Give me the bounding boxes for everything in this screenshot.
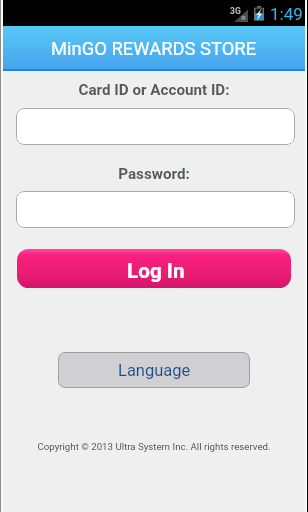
staticText: 3G bbox=[230, 6, 241, 16]
staticText: Password: bbox=[0, 165, 308, 183]
button[interactable] bbox=[16, 191, 295, 228]
button[interactable]: Language bbox=[58, 352, 250, 388]
staticText: MinGO REWARDS STORE bbox=[51, 38, 257, 60]
button[interactable]: Log In bbox=[17, 249, 291, 288]
staticText: Copyright © 2013 Ultra System Inc. All r… bbox=[0, 441, 308, 452]
staticText: 1:49 bbox=[270, 4, 303, 24]
staticText: Language bbox=[118, 361, 191, 380]
button[interactable] bbox=[16, 108, 295, 145]
staticText: Card ID or Account ID: bbox=[0, 81, 308, 99]
staticText: Log In bbox=[127, 259, 185, 283]
